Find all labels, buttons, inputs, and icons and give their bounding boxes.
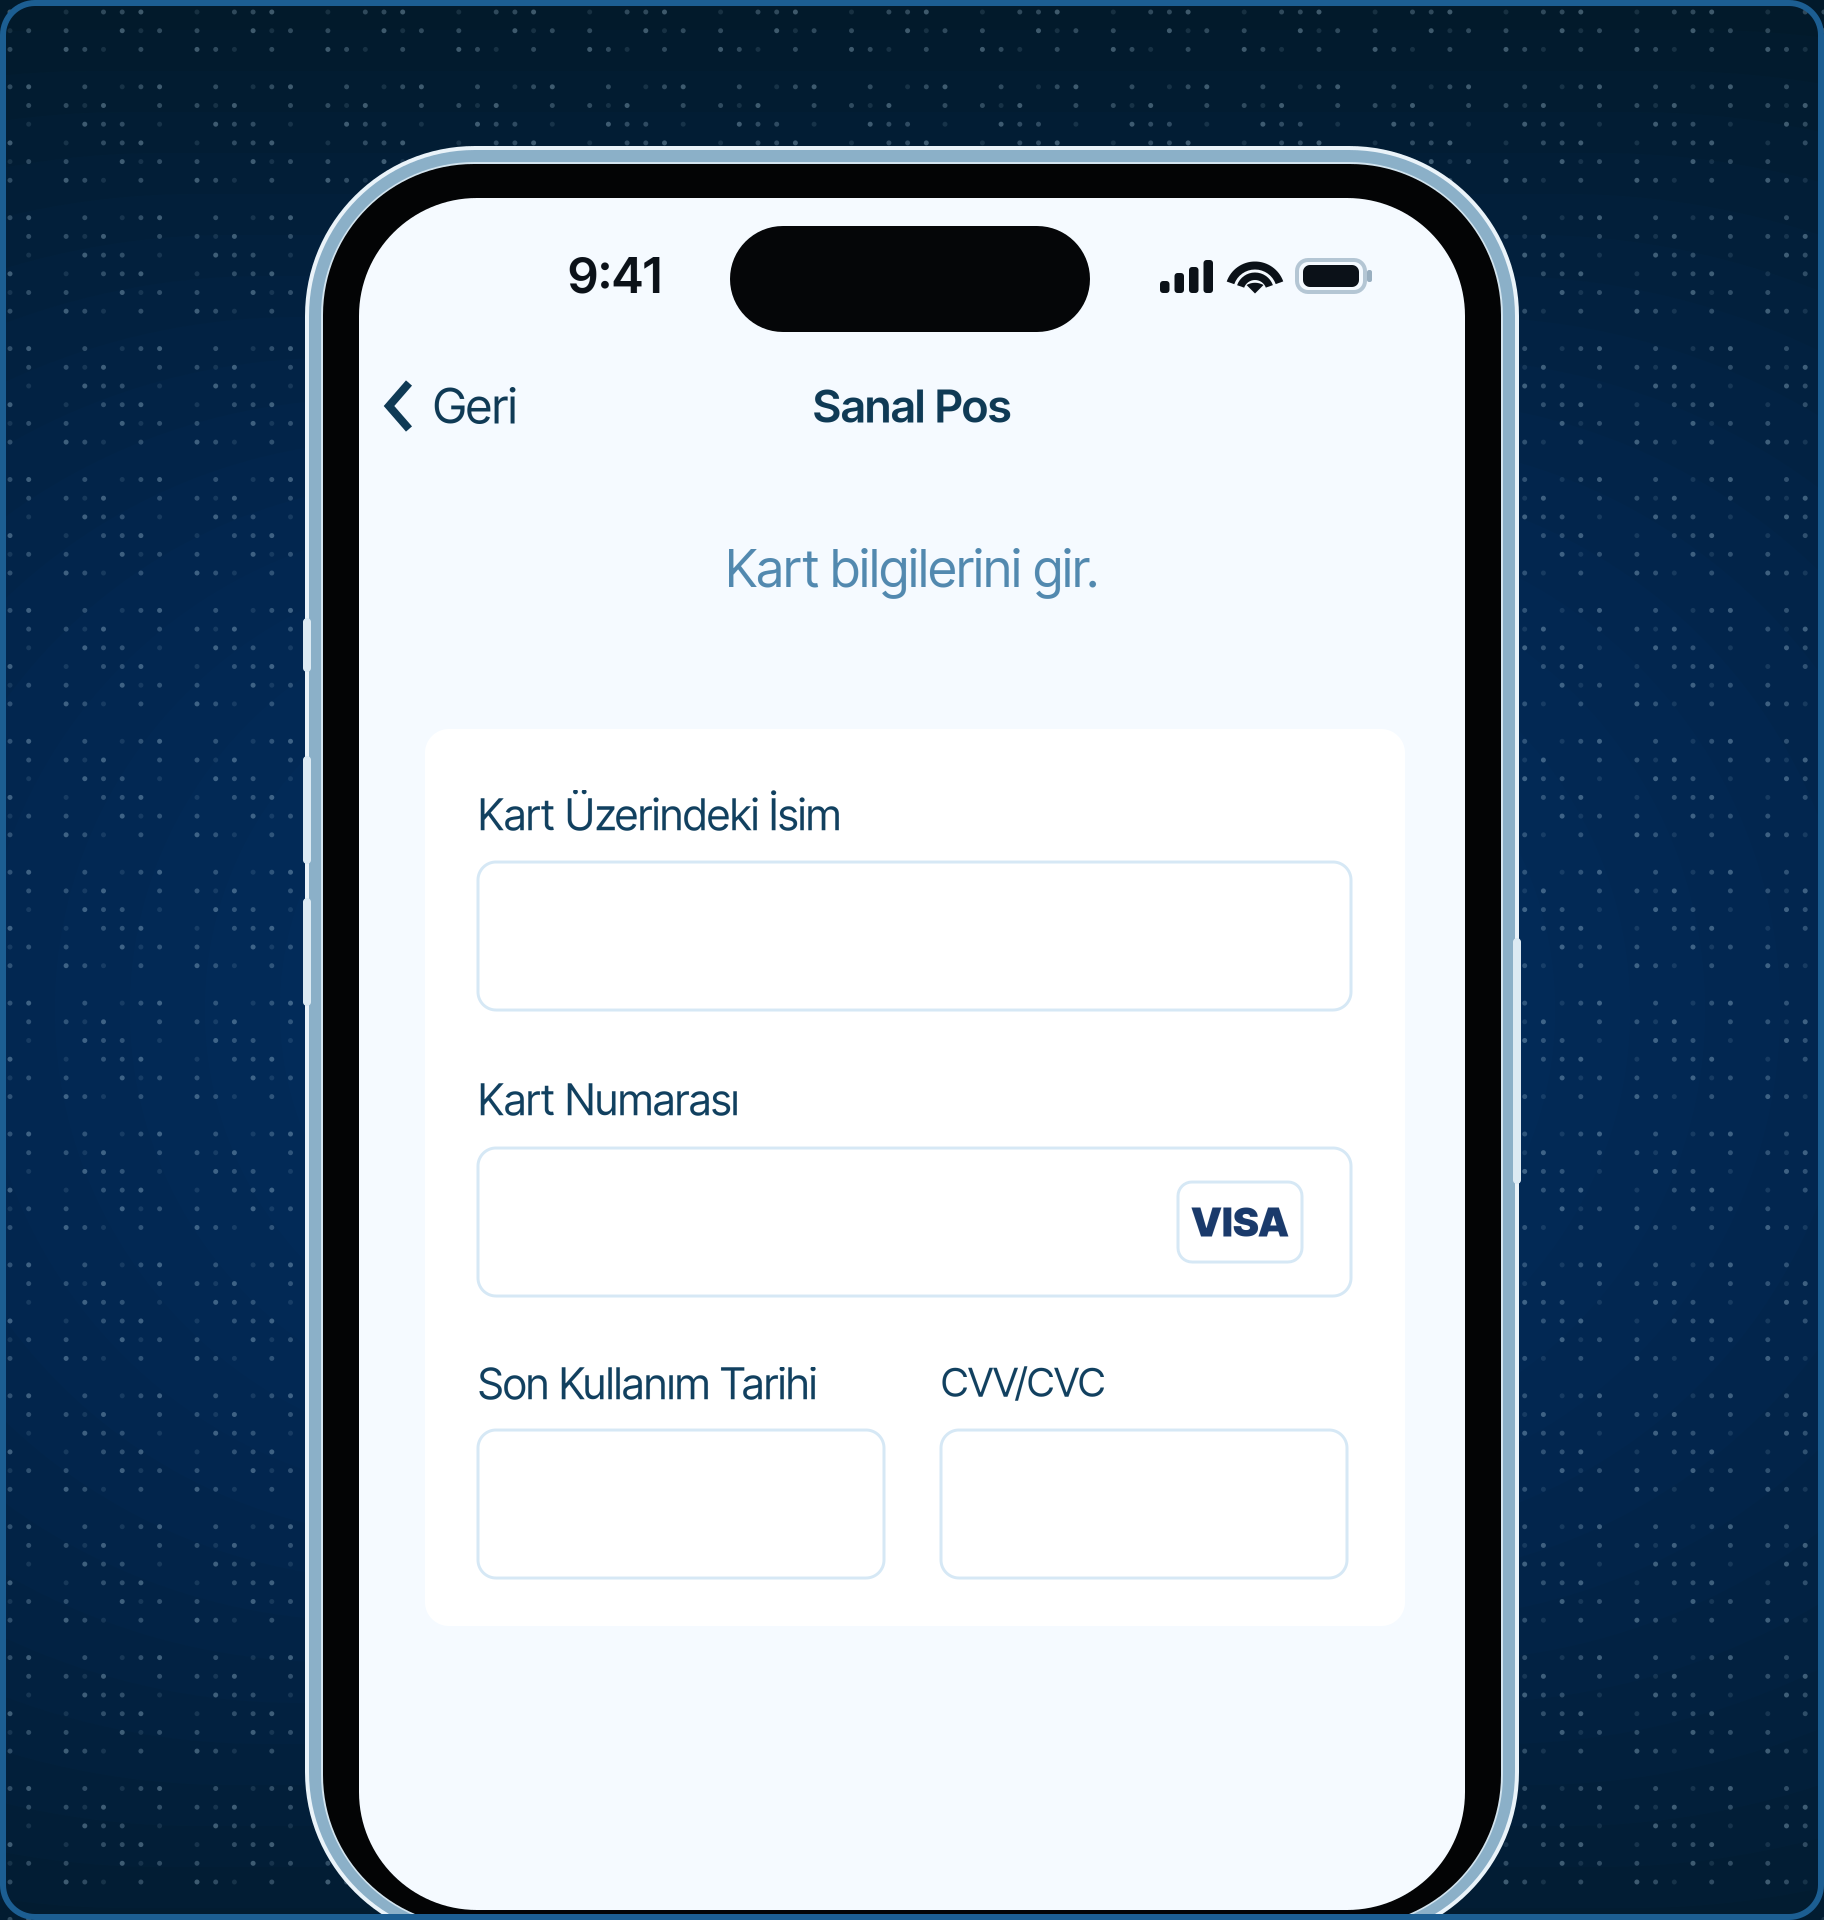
button[interactable]: Text field <box>478 862 1351 1010</box>
staticText: Sanal Pos <box>813 379 1011 433</box>
staticText: Kart Numarası <box>478 1074 739 1126</box>
staticText: VISA <box>1191 1198 1289 1246</box>
button[interactable]: Text field <box>478 1430 884 1578</box>
staticText: Kart bilgilerini gir. <box>725 536 1098 599</box>
staticText: CVV/CVC <box>941 1358 1105 1406</box>
staticText: Son Kullanım Tarihi <box>478 1358 817 1410</box>
button[interactable]: Text field <box>478 1148 1351 1296</box>
button[interactable]: Geri <box>369 362 531 450</box>
staticText: Kart Üzerindeki İsim <box>478 789 841 841</box>
staticText: 9:41 <box>568 245 662 305</box>
staticText: Geri <box>433 377 517 435</box>
button[interactable]: Text field <box>941 1430 1347 1578</box>
